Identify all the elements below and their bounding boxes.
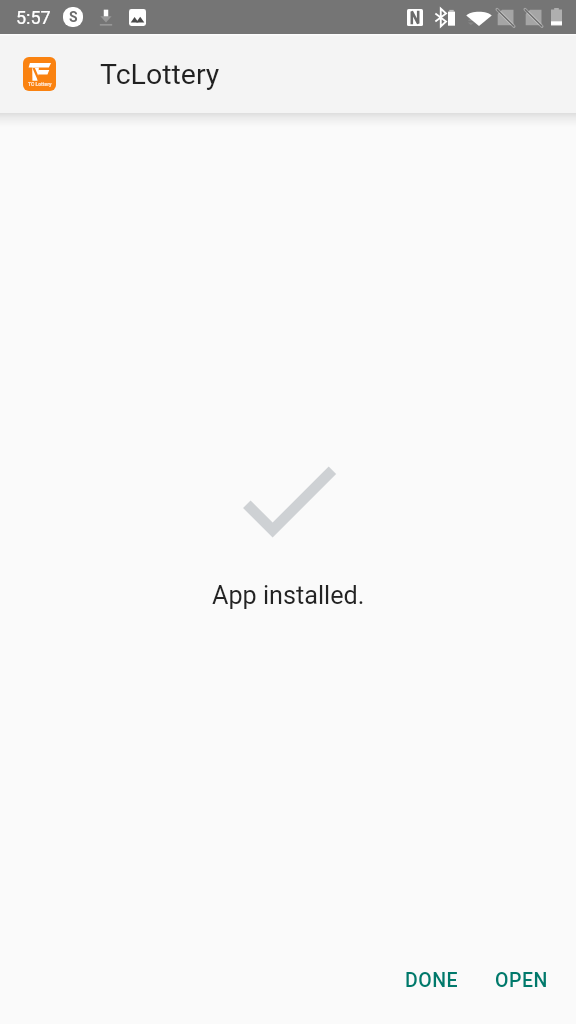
staticText: TcLottery — [100, 58, 220, 91]
button[interactable]: DONE — [391, 959, 473, 1002]
staticText: DONE — [405, 969, 459, 992]
staticText: S — [69, 9, 78, 25]
staticText: 5:57 — [16, 7, 51, 28]
staticText: TC Lottery — [28, 81, 52, 87]
staticText: OPEN — [495, 969, 548, 992]
staticText: App installed. — [212, 581, 365, 611]
button[interactable]: OPEN — [481, 959, 562, 1002]
